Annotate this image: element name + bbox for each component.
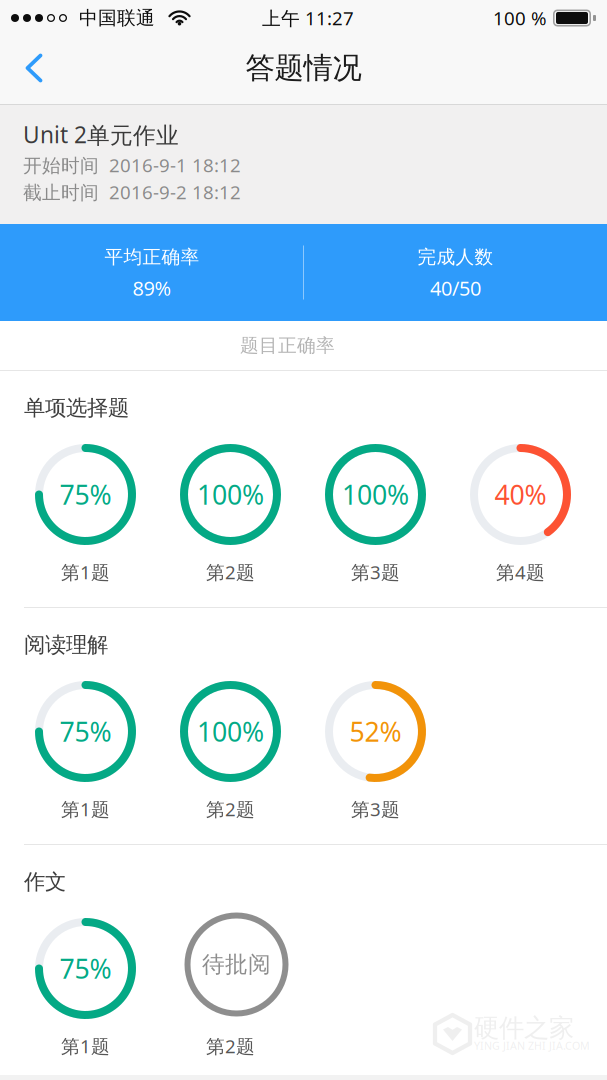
staticText: Unit 2单元作业	[23, 119, 179, 150]
staticText: 待批阅	[202, 951, 271, 978]
staticText: 100 %	[493, 6, 547, 30]
staticText: 题目正确率	[240, 334, 335, 357]
staticText: 第2题	[206, 560, 255, 584]
staticText: 中国联通	[79, 6, 155, 29]
staticText: 40/50	[430, 275, 481, 301]
staticText: 硬件之家	[474, 1012, 574, 1043]
staticText: 作文	[24, 869, 66, 895]
staticText: 89%	[132, 275, 171, 301]
staticText: 完成人数	[417, 245, 493, 268]
staticText: 第2题	[206, 1034, 255, 1058]
staticText: 平均正确率	[104, 245, 199, 268]
staticText: 75%	[59, 714, 111, 749]
staticText: 第1题	[61, 797, 110, 821]
staticText: 第1题	[61, 1034, 110, 1058]
staticText: 100%	[197, 714, 264, 749]
staticText: 75%	[59, 951, 111, 986]
button[interactable]: Back	[9, 38, 59, 102]
staticText: 单项选择题	[24, 395, 129, 421]
staticText: 第1题	[61, 560, 110, 584]
staticText: 第3题	[351, 560, 400, 584]
staticText: 阅读理解	[24, 632, 108, 658]
staticText: 75%	[59, 477, 111, 512]
staticText: 40%	[494, 477, 546, 512]
staticText: 开始时间 2016-9-1 18:12	[23, 153, 241, 177]
staticText: YING JIAN ZHI JIA.COM	[474, 1038, 590, 1053]
staticText: 上午 11:27	[262, 6, 354, 30]
staticText: 第2题	[206, 797, 255, 821]
staticText: 截止时间 2016-9-2 18:12	[23, 180, 241, 204]
staticText: 答题情况	[245, 50, 361, 86]
staticText: 第4题	[496, 560, 545, 584]
staticText: 100%	[342, 477, 409, 512]
staticText: 第3题	[351, 797, 400, 821]
staticText: 52%	[349, 714, 401, 749]
staticText: 100%	[197, 477, 264, 512]
